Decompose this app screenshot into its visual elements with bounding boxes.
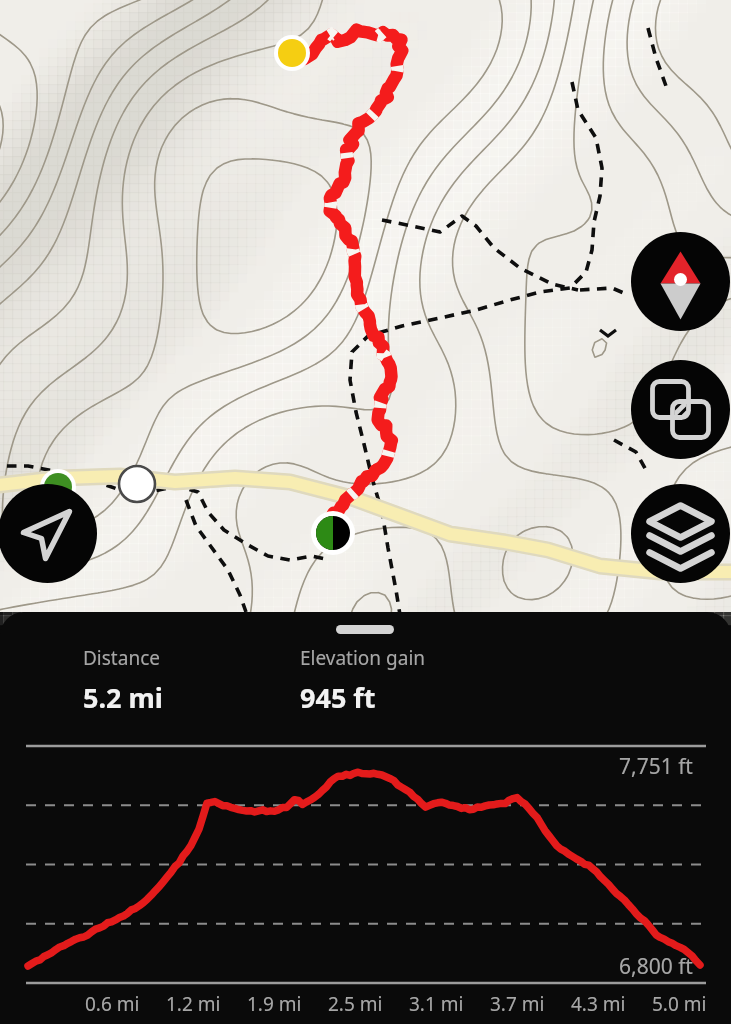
staticText: 6,800 ft	[619, 952, 693, 981]
button[interactable]: Map layers	[631, 484, 730, 583]
staticText: 4.3 mi	[571, 991, 626, 1017]
staticText: 945 ft	[300, 679, 376, 716]
staticText: 2.5 mi	[328, 991, 383, 1017]
staticText: 5.2 mi	[83, 679, 163, 716]
button[interactable]	[336, 625, 394, 634]
button[interactable]: Compare layers	[631, 360, 730, 459]
staticText: 1.2 mi	[166, 991, 221, 1017]
staticText: Distance	[83, 645, 160, 671]
staticText: 3.7 mi	[490, 991, 545, 1017]
staticText: Elevation gain	[300, 645, 426, 671]
staticText: 0.6 mi	[85, 991, 140, 1017]
staticText: 1.9 mi	[247, 991, 302, 1017]
staticText: 3.1 mi	[409, 991, 464, 1017]
staticText: 7,751 ft	[619, 752, 693, 781]
button[interactable]: My location	[0, 484, 97, 583]
button[interactable]: Compass	[631, 232, 730, 331]
staticText: 5.0 mi	[652, 991, 707, 1017]
